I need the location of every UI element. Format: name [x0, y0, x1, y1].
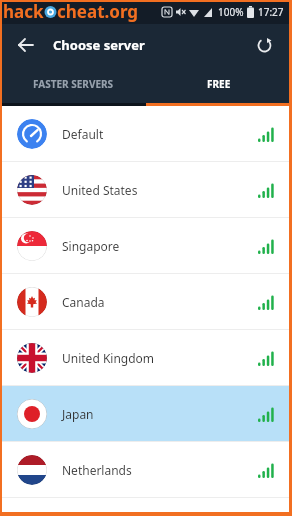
button[interactable]: United Kingdom	[0, 330, 292, 385]
staticText: FREE	[207, 77, 231, 91]
staticText: United States	[62, 182, 138, 198]
staticText: Japan	[62, 406, 94, 422]
staticText: Choose server	[53, 36, 145, 54]
staticText: Default	[62, 126, 104, 142]
button[interactable]: United States	[0, 162, 292, 217]
staticText: 100%	[218, 5, 244, 19]
button[interactable]: Canada	[0, 274, 292, 329]
staticText: Canada	[62, 294, 105, 310]
staticText: United Kingdom	[62, 350, 155, 366]
button[interactable]	[11, 30, 41, 60]
staticText: 17:27	[258, 5, 284, 19]
button[interactable]: Japan	[0, 386, 292, 441]
button[interactable]: Singapore	[0, 218, 292, 273]
staticText: hack	[3, 0, 44, 23]
button[interactable]: Netherlands	[0, 442, 292, 497]
button[interactable]	[244, 25, 284, 65]
staticText: Netherlands	[62, 462, 132, 478]
button[interactable]: FREE	[146, 65, 292, 103]
staticText: Singapore	[62, 238, 120, 254]
button[interactable]: FASTER SERVERS	[0, 65, 146, 103]
staticText: FASTER SERVERS	[33, 77, 114, 91]
staticText: cheat.org	[57, 0, 139, 23]
button[interactable]: Default	[0, 106, 292, 161]
